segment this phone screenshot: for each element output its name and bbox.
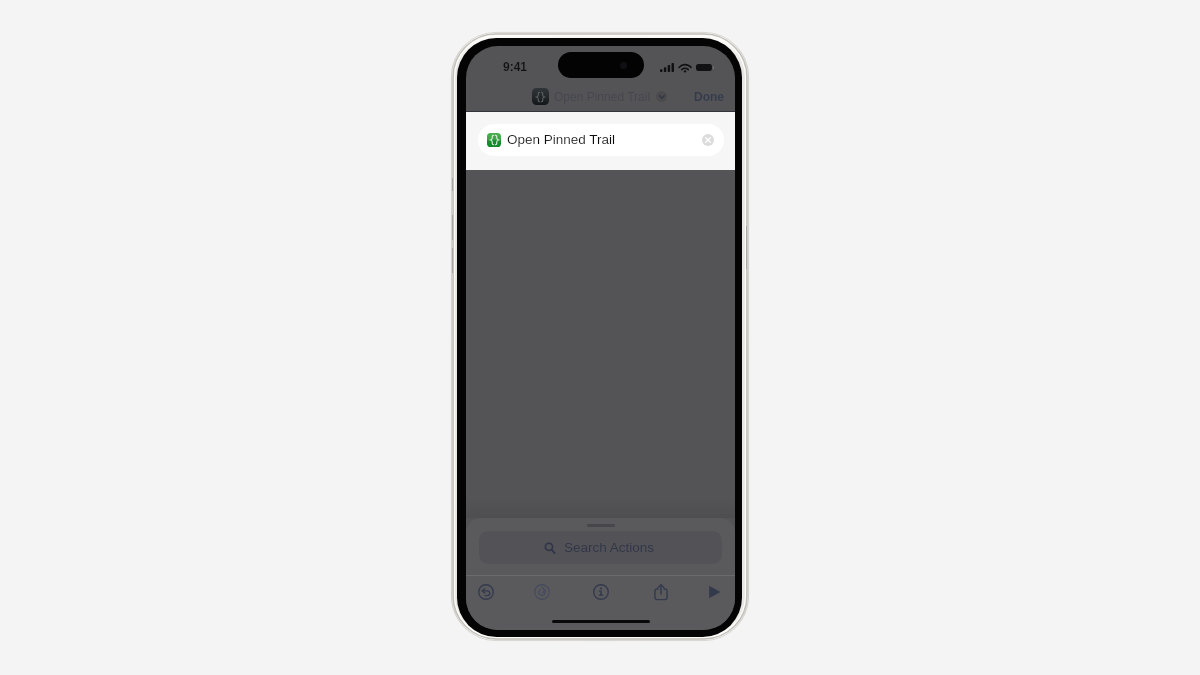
button[interactable]: Clear [702,134,714,146]
staticText: Search Actions [564,540,655,555]
button[interactable]: Redo [527,577,557,607]
button[interactable]: Search Actions [479,531,722,564]
staticText: Open Pinned Trail [554,90,651,103]
button[interactable]: Open Pinned Trail [478,124,724,156]
button[interactable]: Expand shortcut menu [656,91,667,102]
button[interactable]: Info [586,577,616,607]
button[interactable]: Undo [471,577,501,607]
button[interactable]: Share [646,577,676,607]
staticText: Done [694,90,724,103]
button[interactable]: Done [694,90,724,103]
staticText: Open Pinned Trail [507,132,616,147]
button[interactable]: Run shortcut [699,577,729,607]
staticText: 9:41 [503,60,528,73]
